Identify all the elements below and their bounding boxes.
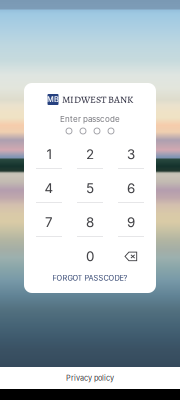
staticText: 3 bbox=[127, 146, 135, 162]
button[interactable]: 7 bbox=[28, 209, 69, 243]
button[interactable]: 2 bbox=[69, 141, 110, 175]
staticText: 0 bbox=[86, 248, 94, 264]
staticText: 2 bbox=[86, 146, 94, 162]
staticText: 8 bbox=[86, 214, 94, 230]
button[interactable]: 1 bbox=[28, 141, 69, 175]
staticText: MB bbox=[47, 95, 59, 104]
staticText: MIDWEST BANK bbox=[62, 93, 133, 106]
button[interactable]: Delete bbox=[110, 243, 151, 277]
staticText: 5 bbox=[86, 180, 94, 196]
staticText: 9 bbox=[127, 214, 135, 230]
button[interactable]: 0 bbox=[69, 243, 110, 277]
staticText: FORGOT PASSCODE? bbox=[52, 274, 127, 282]
button[interactable]: 4 bbox=[28, 175, 69, 209]
button[interactable]: 8 bbox=[69, 209, 110, 243]
button[interactable]: Privacy policy bbox=[0, 367, 180, 389]
button[interactable]: 6 bbox=[110, 175, 151, 209]
staticText: 1 bbox=[46, 146, 51, 162]
staticText: Enter passcode bbox=[60, 114, 120, 124]
button[interactable]: FORGOT PASSCODE? bbox=[24, 270, 156, 286]
button[interactable]: 3 bbox=[110, 141, 151, 175]
staticText: Privacy policy bbox=[66, 374, 114, 382]
button[interactable]: 9 bbox=[110, 209, 151, 243]
staticText: 7 bbox=[45, 214, 53, 230]
staticText: 6 bbox=[127, 180, 135, 196]
button[interactable]: 5 bbox=[69, 175, 110, 209]
staticText: 4 bbox=[44, 180, 53, 196]
